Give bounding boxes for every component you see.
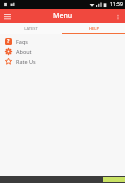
button[interactable]: More options (112, 11, 123, 22)
staticText: About (16, 48, 32, 55)
button[interactable]: LATEST (0, 23, 62, 33)
staticText: Rate Us (16, 58, 36, 65)
staticText: ? (7, 38, 10, 45)
button[interactable]: Open navigation drawer (2, 11, 13, 22)
staticText: Menu (53, 11, 73, 21)
staticText: 11:59 (110, 1, 123, 8)
button[interactable]: About (0, 46, 125, 56)
staticText: HELP (89, 26, 99, 31)
button[interactable]: HELP (62, 23, 125, 33)
staticText: Faqs (16, 38, 28, 45)
button[interactable]: Rate Us (0, 56, 125, 66)
button[interactable]: ? (0, 36, 125, 46)
staticText: LATEST (24, 26, 38, 31)
